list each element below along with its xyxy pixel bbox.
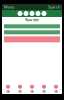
staticText: Tab: [42, 90, 46, 93]
staticText: Tab: [18, 90, 22, 93]
staticText: Tab: [6, 90, 10, 93]
staticText: Tab: [54, 90, 58, 93]
staticText: Tab: [30, 90, 34, 93]
staticText: Row title: [25, 17, 39, 22]
staticText: Menu: [4, 4, 14, 10]
staticText: Search: [48, 4, 60, 10]
